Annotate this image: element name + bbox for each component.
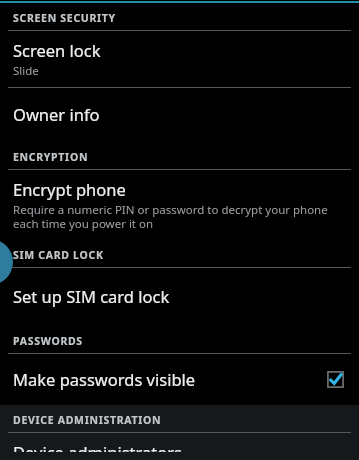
staticText: ENCRYPTION [13, 150, 89, 164]
button[interactable]: Screen lock [0, 31, 359, 87]
staticText: Device administrators [13, 441, 182, 452]
staticText: Slide [13, 63, 39, 79]
staticText: PASSWORDS [13, 334, 83, 348]
button[interactable]: Make passwords visible [0, 354, 359, 405]
staticText: Set up SIM card lock [13, 285, 170, 307]
button[interactable]: Owner info [0, 88, 359, 142]
staticText: Make passwords visible [13, 368, 196, 390]
staticText: SCREEN SECURITY [13, 11, 116, 25]
staticText: Owner info [13, 103, 100, 125]
staticText: Encrypt phone [13, 178, 126, 200]
button[interactable]: Set up SIM card lock [0, 268, 359, 326]
button[interactable]: Encrypt phone [0, 170, 359, 240]
button[interactable]: Device administrators [0, 433, 359, 460]
staticText: Screen lock [13, 39, 101, 61]
staticText: SIM CARD LOCK [13, 248, 104, 262]
staticText: Require a numeric PIN or password to dec… [13, 202, 339, 231]
staticText: DEVICE ADMINISTRATION [13, 413, 162, 427]
